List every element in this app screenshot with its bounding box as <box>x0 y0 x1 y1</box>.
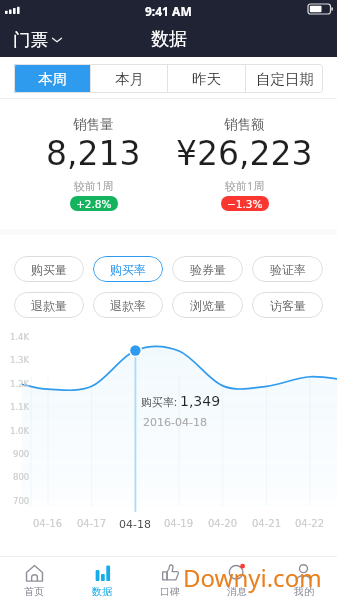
staticText: 销售额 <box>224 116 265 133</box>
staticText: 900 <box>13 449 30 459</box>
staticText: +2.8% <box>76 198 112 210</box>
staticText: 昨天 <box>192 70 221 88</box>
button[interactable]: 购买率 <box>93 256 163 282</box>
staticText: 销售量 <box>73 116 114 133</box>
staticText: 自定日期 <box>256 70 314 88</box>
staticText: 800 <box>13 472 30 482</box>
button[interactable]: 自定日期 <box>246 64 323 93</box>
staticText: 1.1K <box>10 402 30 412</box>
staticText: 我的 <box>294 585 314 598</box>
staticText: 2016-04-18 <box>143 416 207 429</box>
staticText: 本月 <box>115 70 144 88</box>
button[interactable]: 口碑 <box>136 556 203 600</box>
staticText: 04-21 <box>252 518 282 530</box>
staticText: 退款量 <box>31 298 67 313</box>
staticText: 8,213 <box>46 134 141 172</box>
staticText: 1.3K <box>10 355 30 365</box>
button[interactable]: 我的 <box>270 556 337 600</box>
button[interactable]: 本月 <box>91 64 167 93</box>
staticText: 消息 <box>227 585 247 598</box>
button[interactable]: 昨天 <box>168 64 245 93</box>
staticText: 购买率: <box>141 394 180 409</box>
button[interactable]: 数据 <box>68 556 136 600</box>
staticText: 购买量 <box>31 262 67 277</box>
staticText: 04-17 <box>77 518 107 530</box>
staticText: 首页 <box>24 585 44 598</box>
staticText: Downyi.com <box>183 561 322 594</box>
staticText: 1,349 <box>180 393 221 409</box>
staticText: 数据 <box>92 585 112 598</box>
staticText: 04-19 <box>164 518 194 530</box>
button[interactable]: 浏览量 <box>172 292 243 318</box>
staticText: 购买率 <box>110 262 146 277</box>
staticText: 浏览量 <box>190 298 226 313</box>
button[interactable]: 退款量 <box>14 292 84 318</box>
staticText: 04-16 <box>33 518 63 530</box>
staticText: 1.0K <box>10 426 30 436</box>
staticText: 04-20 <box>208 518 238 530</box>
staticText: 700 <box>13 496 30 506</box>
staticText: 04-18 <box>119 518 151 531</box>
staticText: 退款率 <box>110 298 146 313</box>
staticText: 04-22 <box>295 518 325 530</box>
button[interactable]: 购买量 <box>14 256 84 282</box>
button[interactable]: 消息 <box>203 556 270 600</box>
staticText: 较前1周 <box>225 178 265 193</box>
staticText: 口碑 <box>160 585 180 598</box>
staticText: 数据 <box>151 28 187 51</box>
button[interactable]: 本周 <box>14 64 90 93</box>
staticText: 1.2K <box>10 379 30 389</box>
button[interactable]: 首页 <box>0 556 68 600</box>
button[interactable]: 验券量 <box>172 256 243 282</box>
staticText: 9:41 AM <box>145 3 192 19</box>
staticText: 本周 <box>38 70 67 88</box>
button[interactable]: 门票 <box>13 22 62 57</box>
staticText: −1.3% <box>227 198 263 210</box>
staticText: 验证率 <box>270 262 306 277</box>
staticText: 较前1周 <box>74 178 114 193</box>
staticText: 门票 <box>13 29 48 51</box>
staticText: ¥26,223 <box>176 134 313 172</box>
staticText: 1.4K <box>10 332 30 342</box>
button[interactable]: 访客量 <box>252 292 323 318</box>
button[interactable]: 验证率 <box>252 256 323 282</box>
button[interactable]: 退款率 <box>93 292 163 318</box>
staticText: 访客量 <box>270 298 306 313</box>
staticText: 验券量 <box>190 262 226 277</box>
